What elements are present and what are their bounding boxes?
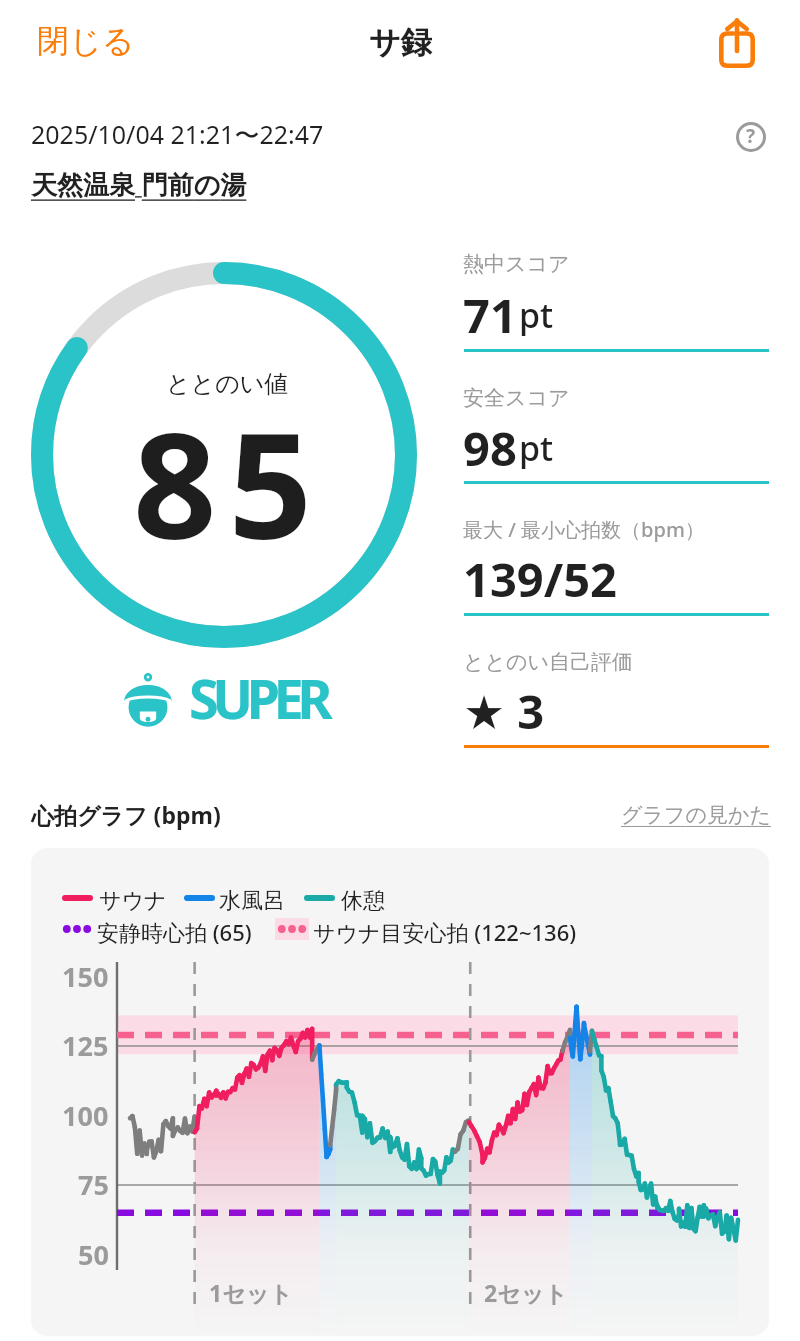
staticText: ?: [746, 123, 756, 149]
staticText: サウナ: [99, 887, 167, 915]
staticText: 安全スコア: [463, 385, 570, 411]
staticText: pt: [519, 425, 554, 471]
staticText: 最大 / 最小心拍数（bpm）: [463, 516, 705, 543]
staticText: 水風呂: [219, 887, 285, 915]
staticText: 熱中スコア: [463, 251, 570, 277]
button[interactable]: 閉じる: [26, 12, 146, 70]
button[interactable]: Share: [719, 18, 755, 68]
staticText: サ録: [369, 23, 432, 62]
staticText: 休憩: [341, 887, 385, 915]
staticText: 心拍グラフ (bpm): [31, 799, 221, 830]
staticText: 150: [62, 958, 109, 995]
staticText: 2025/10/04 21:21〜22:47: [31, 117, 324, 151]
button[interactable]: グラフの見かた: [621, 802, 771, 828]
staticText: 2セット: [484, 1277, 568, 1308]
staticText: 71: [463, 283, 517, 347]
staticText: 1セット: [209, 1277, 293, 1308]
staticText: 98: [463, 416, 517, 480]
staticText: グラフの見かた: [621, 802, 771, 828]
staticText: 天然温泉 門前の湯: [31, 166, 247, 202]
staticText: 75: [78, 1166, 109, 1203]
staticText: 安静時心拍 (65): [97, 917, 252, 947]
staticText: ととのい自己評価: [463, 649, 633, 675]
button[interactable]: 天然温泉 門前の湯: [31, 166, 247, 202]
staticText: 125: [62, 1027, 109, 1064]
staticText: 閉じる: [37, 21, 135, 61]
staticText: SUPER: [189, 661, 327, 735]
staticText: 100: [62, 1097, 109, 1134]
staticText: pt: [519, 292, 554, 338]
button[interactable]: Help: [736, 122, 766, 152]
staticText: 139/52: [463, 547, 617, 611]
staticText: ★ 3: [463, 679, 545, 743]
staticText: 50: [78, 1236, 109, 1273]
staticText: ととのい値: [166, 369, 289, 399]
staticText: 85: [133, 383, 325, 582]
staticText: サウナ目安心拍 (122~136): [313, 917, 577, 947]
